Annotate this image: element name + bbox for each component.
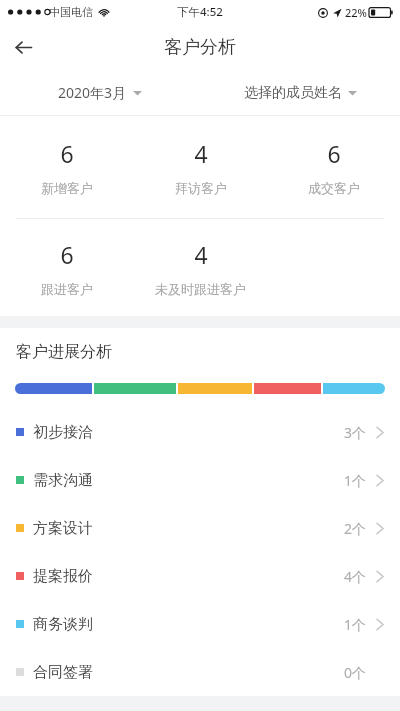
staticText: 6: [60, 138, 74, 169]
staticText: 客户分析: [164, 36, 236, 59]
staticText: 2个: [344, 519, 367, 538]
staticText: 6: [327, 138, 341, 169]
staticText: 提案报价: [33, 567, 93, 586]
staticText: 2020年3月: [58, 83, 127, 102]
button[interactable]: Back: [0, 24, 46, 70]
staticText: 未及时跟进客户: [155, 281, 246, 297]
button[interactable]: 6: [0, 138, 134, 196]
staticText: 0个: [344, 663, 367, 682]
button[interactable]: 合同签署: [0, 648, 400, 696]
staticText: 4: [194, 239, 208, 270]
button[interactable]: 需求沟通: [0, 456, 400, 504]
staticText: 6: [60, 239, 74, 270]
staticText: 新增客户: [41, 180, 93, 196]
staticText: 4个: [344, 567, 367, 586]
staticText: 1个: [344, 471, 367, 490]
staticText: 中国电信: [49, 5, 93, 19]
button[interactable]: 6: [267, 138, 400, 196]
button[interactable]: 6: [0, 239, 134, 297]
staticText: 需求沟通: [33, 471, 93, 490]
staticText: 商务谈判: [33, 615, 93, 634]
staticText: 22%: [345, 5, 367, 20]
button[interactable]: 4: [134, 138, 267, 196]
button[interactable]: 4: [134, 239, 267, 297]
staticText: 合同签署: [33, 663, 93, 682]
button[interactable]: 初步接洽: [0, 408, 400, 456]
button[interactable]: 2020年3月: [58, 73, 142, 112]
button[interactable]: 方案设计: [0, 504, 400, 552]
staticText: 选择的成员姓名: [244, 84, 342, 102]
staticText: 下午4:52: [177, 4, 223, 20]
staticText: 跟进客户: [41, 281, 93, 297]
staticText: 1个: [344, 615, 367, 634]
staticText: 成交客户: [308, 180, 360, 196]
staticText: 方案设计: [33, 519, 93, 538]
staticText: 拜访客户: [175, 180, 227, 196]
staticText: 客户进展分析: [16, 342, 112, 362]
staticText: 4: [194, 138, 208, 169]
button[interactable]: 提案报价: [0, 552, 400, 600]
button[interactable]: 商务谈判: [0, 600, 400, 648]
staticText: 3个: [344, 423, 367, 442]
staticText: 初步接洽: [33, 423, 93, 442]
button[interactable]: 选择的成员姓名: [244, 74, 357, 112]
